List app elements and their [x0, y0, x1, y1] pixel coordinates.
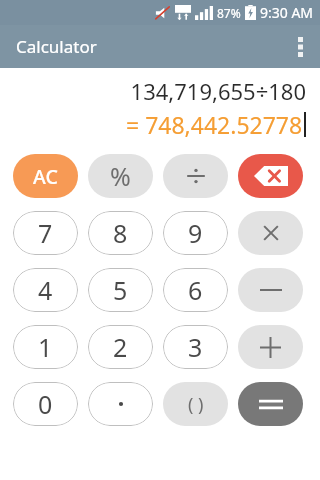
- button[interactable]: Backspace: [238, 154, 303, 198]
- button[interactable]: Equals: [238, 382, 303, 426]
- staticText: 4: [38, 273, 53, 307]
- button[interactable]: Multiply: [238, 211, 303, 255]
- button[interactable]: 6: [163, 268, 228, 312]
- staticText: %: [110, 159, 131, 193]
- button[interactable]: Minus: [238, 268, 303, 312]
- staticText: AC: [33, 163, 58, 190]
- button[interactable]: 5: [88, 268, 153, 312]
- button[interactable]: More options: [280, 27, 320, 67]
- staticText: 87%: [217, 5, 241, 21]
- staticText: 5: [113, 273, 128, 307]
- button[interactable]: AC: [13, 154, 78, 198]
- button[interactable]: 2: [88, 325, 153, 369]
- staticText: 3: [188, 330, 203, 364]
- staticText: 0: [38, 387, 53, 421]
- button[interactable]: 8: [88, 211, 153, 255]
- staticText: 8: [113, 216, 128, 250]
- staticText: 9:30 AM: [260, 3, 314, 22]
- staticText: = 748,442.52778: [126, 109, 303, 140]
- button[interactable]: 9: [163, 211, 228, 255]
- staticText: 9: [188, 216, 203, 250]
- button[interactable]: 0: [13, 382, 78, 426]
- staticText: 2: [113, 330, 128, 364]
- button[interactable]: %: [88, 154, 153, 198]
- button[interactable]: ( ): [163, 382, 228, 426]
- staticText: 1: [38, 330, 53, 364]
- button[interactable]: 7: [13, 211, 78, 255]
- button[interactable]: Plus: [238, 325, 303, 369]
- staticText: Calculator: [16, 35, 97, 58]
- staticText: 7: [38, 216, 53, 250]
- button[interactable]: Decimal point: [88, 382, 153, 426]
- staticText: ( ): [188, 392, 204, 417]
- staticText: 134,719,655÷180: [130, 76, 306, 106]
- button[interactable]: 3: [163, 325, 228, 369]
- staticText: 6: [188, 273, 203, 307]
- button[interactable]: 4: [13, 268, 78, 312]
- button[interactable]: Divide: [163, 154, 228, 198]
- button[interactable]: 1: [13, 325, 78, 369]
